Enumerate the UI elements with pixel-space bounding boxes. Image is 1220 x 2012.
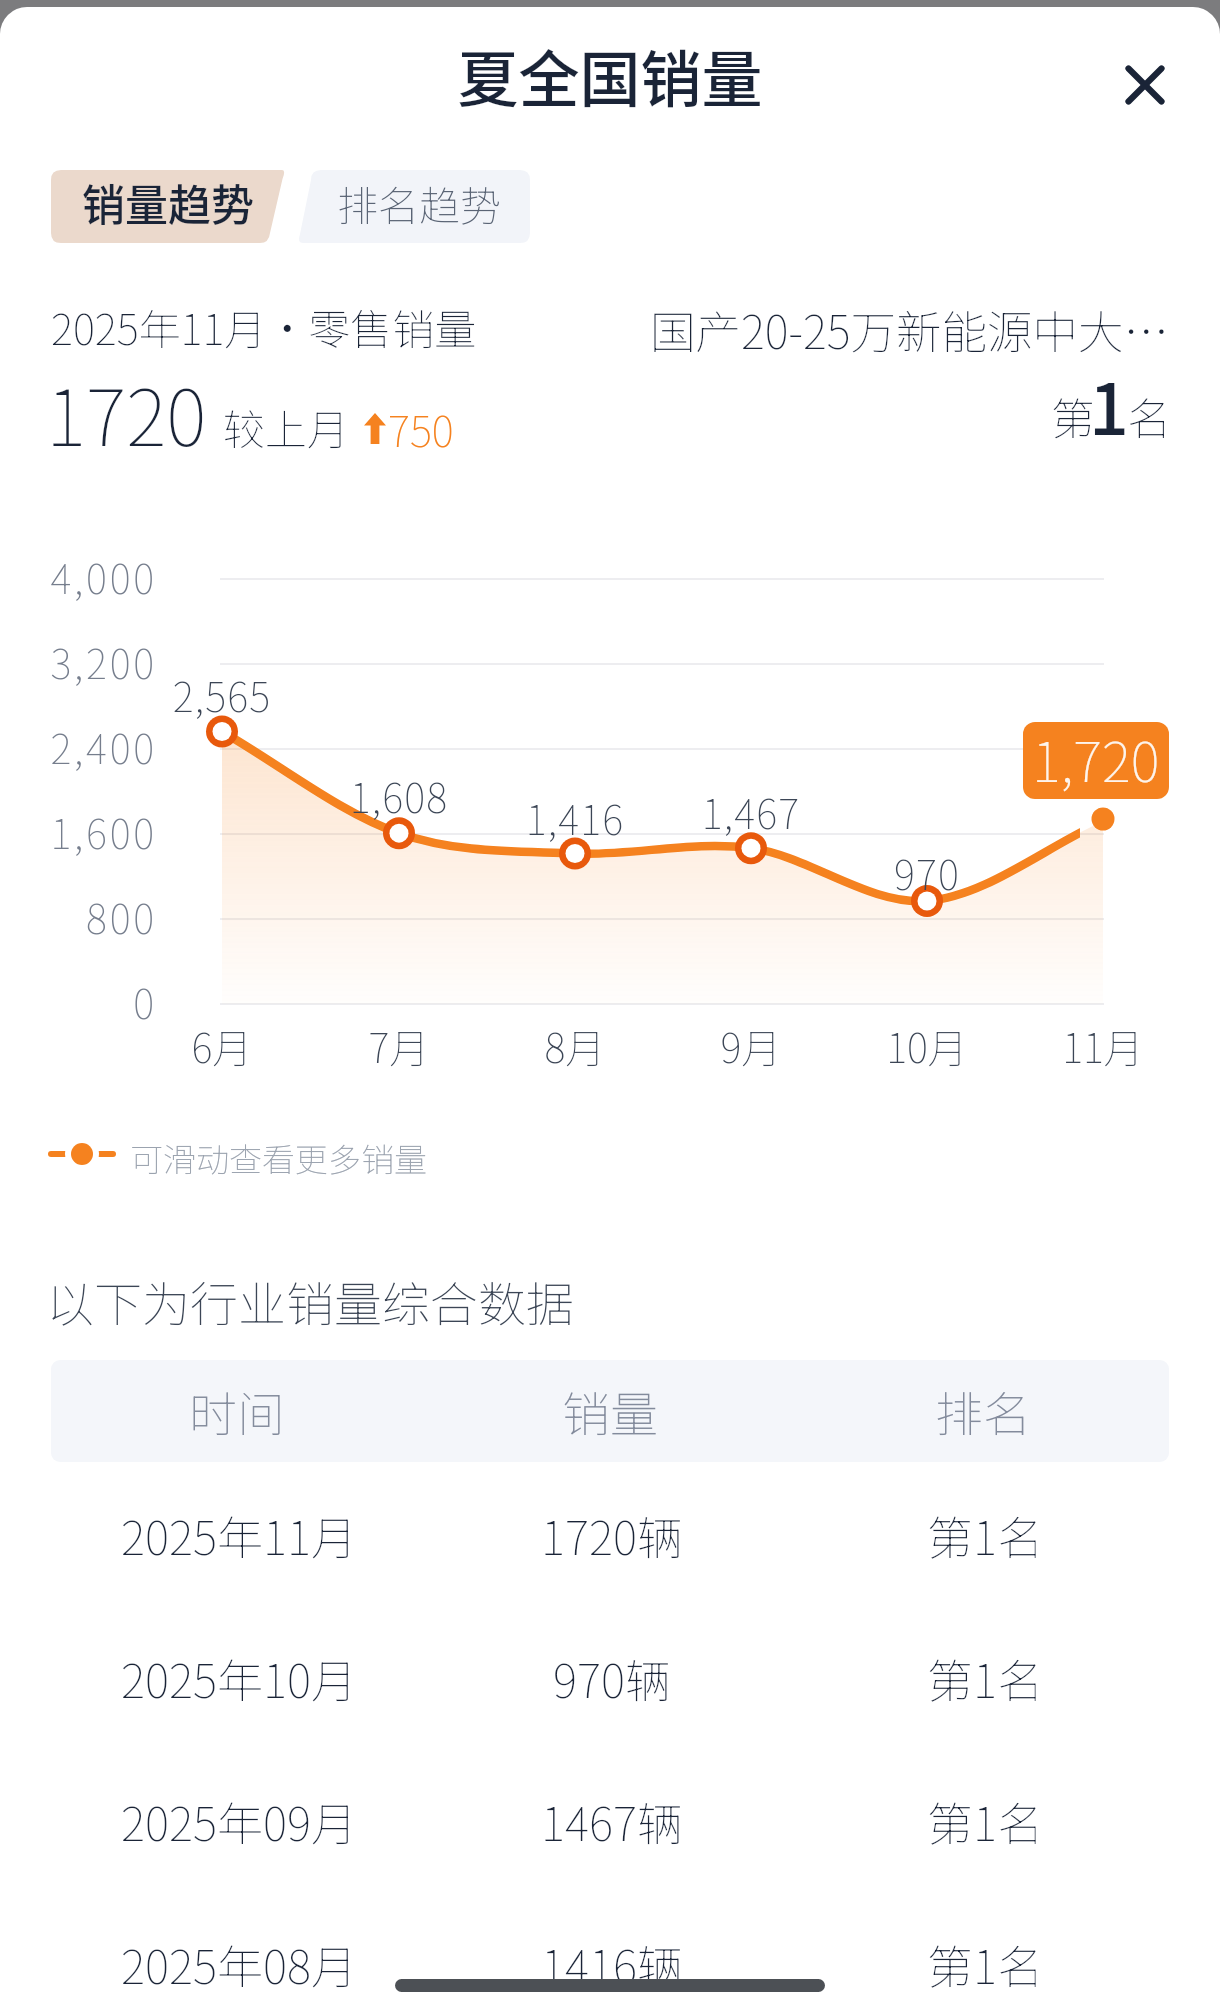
staticText: 销量 (423, 1376, 797, 1446)
staticText: 1,467 (641, 783, 861, 841)
staticText: 名 (1127, 384, 1171, 448)
staticText: 第 (1051, 384, 1095, 448)
staticText: 11月 (993, 1017, 1213, 1075)
staticText: 9月 (641, 1017, 861, 1075)
staticText: 排名 (797, 1376, 1169, 1446)
button[interactable]: 销量趋势 (51, 170, 286, 243)
staticText: 1,416 (465, 789, 685, 847)
staticText: 0 (0, 973, 157, 1031)
staticText: 夏全国销量 (455, 31, 765, 119)
staticText: 1 (1089, 354, 1129, 455)
staticText: 1720辆 (425, 1502, 799, 1569)
staticText: 时间 (51, 1376, 423, 1446)
staticText: 国产20-25万新能源中大… (560, 296, 1169, 362)
staticText: 2025年09月 (53, 1788, 425, 1855)
staticText: 2025年11月·零售销量 (51, 296, 477, 357)
staticText: 970辆 (425, 1645, 799, 1712)
staticText: 1,600 (0, 803, 157, 861)
staticText: 2,400 (0, 718, 157, 776)
staticText: 1,608 (289, 767, 509, 825)
button[interactable]: 关闭 (1113, 53, 1177, 117)
staticText: 第1名 (799, 1931, 1171, 1998)
button[interactable]: 2025年11月 (53, 1464, 1171, 1607)
staticText: 2025年10月 (53, 1645, 425, 1712)
button[interactable]: 2025年09月 (53, 1750, 1171, 1893)
staticText: 2025年11月 (53, 1502, 425, 1569)
staticText: 第1名 (799, 1645, 1171, 1712)
staticText: 970 (817, 844, 1037, 902)
staticText: 3,200 (0, 633, 157, 691)
staticText: 6月 (112, 1017, 332, 1075)
staticText: 800 (0, 888, 157, 946)
staticText: 1720 (46, 357, 207, 468)
staticText: 1,720 (1032, 722, 1160, 795)
staticText: 1416辆 (425, 1931, 799, 1998)
staticText: 2,565 (112, 666, 332, 724)
staticText: 销量趋势 (82, 171, 254, 233)
staticText: 4,000 (0, 548, 157, 606)
button[interactable]: 2025年10月 (53, 1607, 1171, 1750)
staticText: 8月 (465, 1017, 685, 1075)
staticText: 第1名 (799, 1502, 1171, 1569)
staticText: 10月 (817, 1017, 1037, 1075)
button[interactable]: 排名趋势 (297, 170, 530, 243)
button[interactable]: 2025年08月 (53, 1893, 1171, 2012)
staticText: 750 (388, 398, 454, 459)
staticText: 7月 (289, 1017, 509, 1075)
staticText: 较上月 (223, 396, 350, 457)
staticText: 第1名 (799, 1788, 1171, 1855)
staticText: 排名趋势 (337, 173, 501, 232)
staticText: 1467辆 (425, 1788, 799, 1855)
staticText: 可滑动查看更多销量 (130, 1134, 427, 1182)
staticText: 2025年08月 (53, 1931, 425, 1998)
staticText: 以下为行业销量综合数据 (46, 1266, 575, 1336)
